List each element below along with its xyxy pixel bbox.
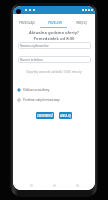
staticText: Aktualna godzina oferty? Poniedziałek od… <box>18 30 90 41</box>
staticText: WIĘCEJ <box>76 21 87 25</box>
staticText: PRZEGLĄD <box>19 21 35 25</box>
button[interactable]: Numer telefonu <box>18 56 91 63</box>
staticText: Numer telefonu <box>20 58 44 62</box>
button[interactable]: Nazwa użytkownika <box>18 42 91 49</box>
button[interactable]: Back <box>26 180 36 190</box>
staticText: ZATWIERDŹ <box>37 114 53 118</box>
staticText: PRZELEW <box>48 21 62 25</box>
button[interactable]: WIĘCEJ <box>68 14 95 27</box>
staticText: Nazwa użytkownika <box>20 44 49 48</box>
button[interactable]: PRZELEW <box>41 14 68 27</box>
staticText: Przelew natychmiastowy <box>23 98 60 102</box>
button[interactable]: Przelew natychmiastowy <box>17 96 91 104</box>
button[interactable]: Recents <box>72 180 82 190</box>
button[interactable]: PRZEGLĄD <box>13 14 41 27</box>
staticText: Odbiorca zaufany <box>23 88 50 92</box>
staticText: Dopełnij warunki zakładki 13:00 minuty <box>17 70 91 74</box>
button[interactable]: ANULUJ <box>59 112 72 119</box>
staticText: ANULUJ <box>60 114 71 118</box>
button[interactable]: Odbiorca zaufany <box>17 86 91 94</box>
button[interactable]: Home <box>49 180 59 190</box>
button[interactable]: ZATWIERDŹ <box>36 112 54 119</box>
